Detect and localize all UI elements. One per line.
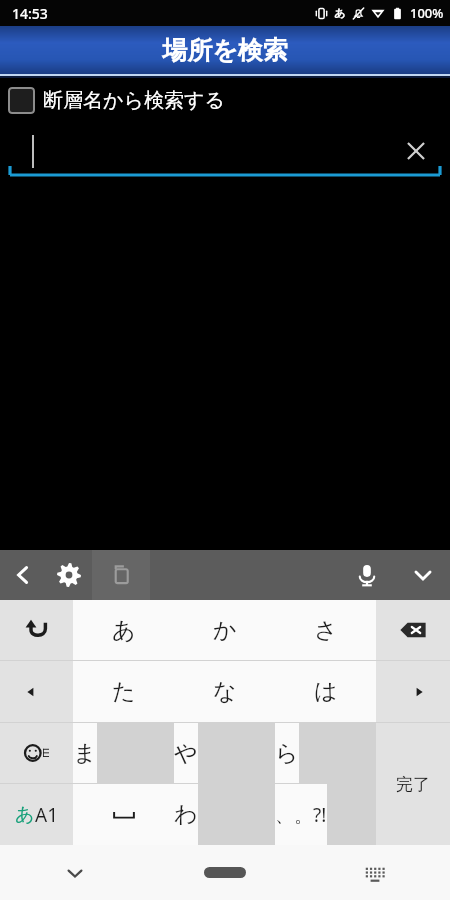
button[interactable]: Switch keyboard bbox=[300, 845, 450, 900]
button[interactable]: か bbox=[174, 600, 275, 660]
staticText: あ bbox=[334, 6, 346, 20]
staticText: わ bbox=[174, 800, 198, 829]
button[interactable]: 断層名から検索する bbox=[0, 78, 450, 122]
staticText: ま bbox=[73, 739, 97, 768]
button[interactable]: 完了 bbox=[376, 723, 450, 845]
staticText: は bbox=[314, 677, 338, 706]
staticText: な bbox=[213, 677, 237, 706]
staticText: 完了 bbox=[396, 774, 430, 795]
button[interactable]: な bbox=[174, 661, 275, 722]
staticText: 100% bbox=[410, 4, 444, 22]
button[interactable]: は bbox=[275, 661, 376, 722]
staticText: ら bbox=[275, 739, 299, 768]
button[interactable]: Clear bbox=[403, 138, 429, 164]
button[interactable]: わ bbox=[174, 784, 198, 845]
button[interactable]: Hide keyboard bbox=[396, 550, 450, 600]
staticText: か bbox=[213, 616, 237, 645]
button[interactable]: や bbox=[174, 723, 198, 783]
staticText: 断層名から検索する bbox=[43, 88, 225, 113]
staticText: 、。?! bbox=[275, 802, 327, 828]
staticText: あ bbox=[15, 803, 35, 827]
button[interactable]: Key bbox=[376, 600, 450, 660]
button[interactable]: Settings bbox=[46, 550, 92, 600]
staticText: た bbox=[112, 677, 136, 706]
button[interactable]: Key bbox=[376, 661, 450, 722]
button[interactable]: た bbox=[73, 661, 174, 722]
staticText: 場所を検索 bbox=[162, 35, 288, 66]
button[interactable]: あ bbox=[73, 600, 174, 660]
button[interactable]: さ bbox=[275, 600, 376, 660]
button[interactable]: Key bbox=[0, 723, 73, 783]
button[interactable]: Back bbox=[0, 845, 150, 900]
staticText: 14:53 bbox=[12, 4, 48, 23]
button[interactable]: Clipboard bbox=[92, 550, 150, 600]
staticText: A1 bbox=[35, 802, 59, 828]
button[interactable]: Back bbox=[0, 550, 46, 600]
staticText: さ bbox=[314, 616, 338, 645]
button[interactable]: あ bbox=[0, 784, 73, 845]
button[interactable]: Clear bbox=[0, 122, 450, 180]
button[interactable]: Home bbox=[150, 845, 300, 900]
button[interactable]: 、。?! bbox=[275, 784, 327, 845]
staticText: あ bbox=[112, 616, 136, 645]
button[interactable]: Space bbox=[73, 784, 174, 845]
button[interactable]: ら bbox=[275, 723, 299, 783]
button[interactable]: Key bbox=[0, 600, 73, 660]
button[interactable]: Voice input bbox=[338, 550, 396, 600]
button[interactable]: ま bbox=[73, 723, 97, 783]
staticText: や bbox=[174, 739, 198, 768]
button[interactable]: Key bbox=[0, 661, 73, 722]
